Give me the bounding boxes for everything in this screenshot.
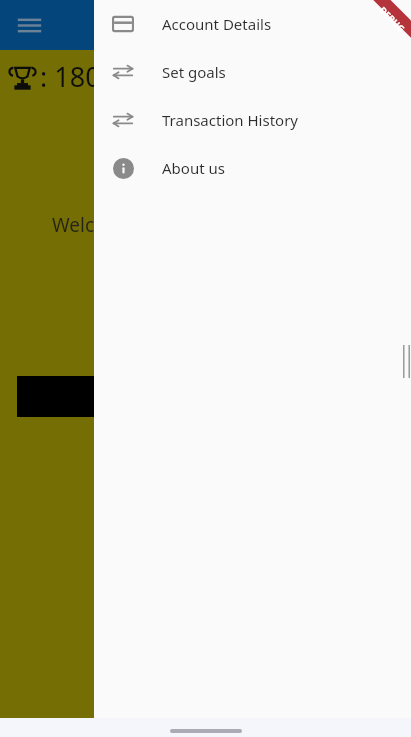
button[interactable]: Account Details [94, 0, 411, 48]
staticText: Transaction History [162, 110, 299, 130]
button[interactable]: Transaction History [94, 96, 411, 144]
staticText: Welcome back! [52, 212, 186, 238]
staticText: Set goals [162, 62, 226, 82]
staticText: DEBUG [377, 4, 408, 34]
button[interactable] [17, 376, 394, 417]
staticText: Account Details [162, 14, 272, 34]
staticText: : 1800 [40, 58, 117, 95]
button[interactable]: About us [94, 144, 411, 192]
button[interactable]: Set goals [94, 48, 411, 96]
staticText: About us [162, 158, 225, 178]
button[interactable]: Open navigation menu [7, 3, 51, 47]
